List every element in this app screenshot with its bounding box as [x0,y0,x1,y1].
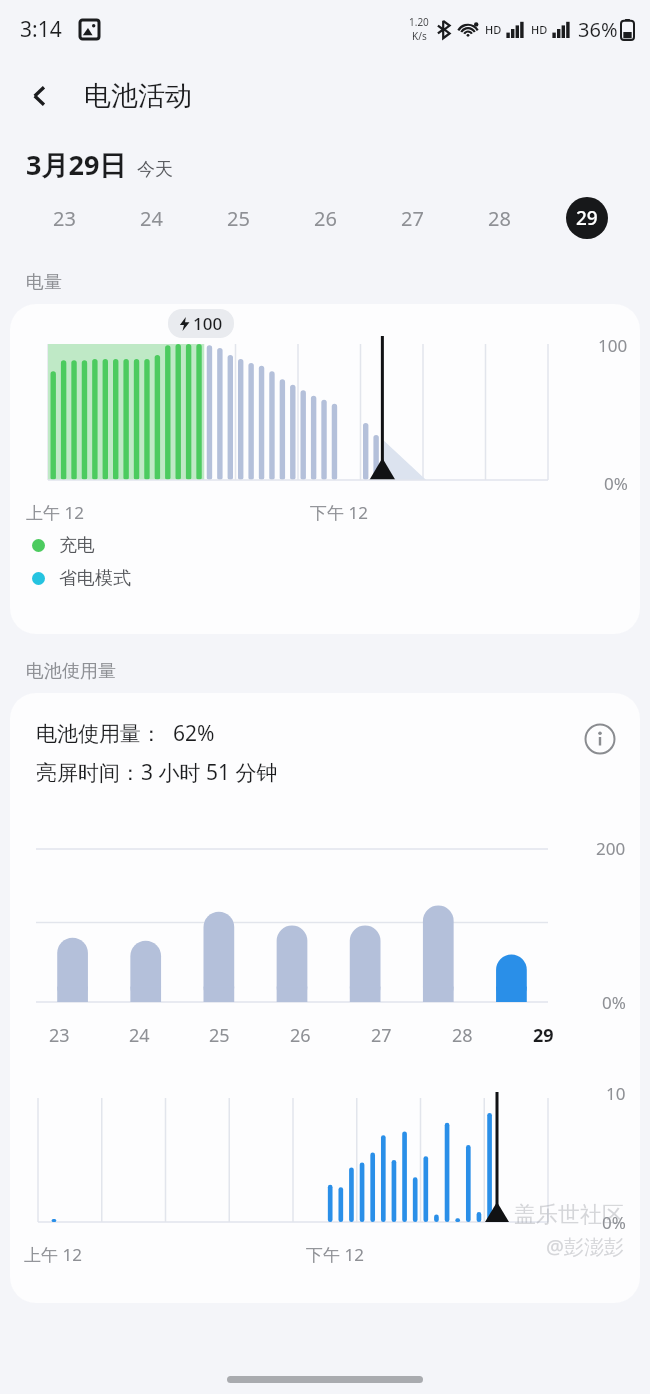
staticText: 23 [53,205,76,232]
staticText: 27 [371,1023,392,1048]
button[interactable]: Back [14,70,66,122]
staticText: 亮屏时间：3 小时 51 分钟 [36,758,278,787]
button[interactable]: 23 [20,183,108,253]
button[interactable]: 27 [369,183,456,253]
staticText: 28 [452,1023,473,1048]
staticText: 0% [604,472,628,495]
staticText: 0% [602,991,626,1014]
button[interactable]: 26 [282,183,369,253]
staticText: 10 [606,1082,626,1105]
staticText: 电量 [26,271,62,294]
staticText: 29 [576,205,598,231]
staticText: 26 [290,1023,311,1048]
staticText: 3月29日 [26,146,127,183]
staticText: 200 [596,837,626,860]
staticText: 下午 12 [310,501,368,524]
button[interactable]: 29 [543,183,630,253]
staticText: 今天 [137,158,173,181]
staticText: 下午 12 [306,1243,364,1266]
staticText: 上午 12 [26,501,84,524]
staticText: 1.20 [409,15,429,29]
staticText: 36% [578,16,618,43]
staticText: 省电模式 [59,567,131,590]
staticText: 电池使用量 [26,660,116,683]
button[interactable]: 电池使用量： 62% [10,693,640,1303]
staticText: 25 [209,1023,230,1048]
button[interactable]: 28 [456,183,543,253]
staticText: 3:14 [20,15,62,44]
button[interactable]: 100 [10,304,640,634]
staticText: 100 [598,334,628,357]
staticText: 0% [602,1211,626,1234]
staticText: 29 [533,1023,554,1048]
staticText: 24 [129,1023,150,1048]
staticText: 23 [49,1023,70,1048]
button[interactable]: 25 [195,183,282,253]
staticText: 27 [401,205,424,232]
staticText: 电池使用量： 62% [36,719,215,748]
staticText: 25 [227,205,250,232]
staticText: 100 [193,312,223,335]
staticText: 电池活动 [84,79,192,113]
staticText: 充电 [59,534,95,557]
button[interactable]: Info [580,719,620,759]
staticText: 盖乐世社区 [514,1201,624,1229]
button[interactable]: 24 [108,183,195,253]
staticText: HD [531,22,548,37]
staticText: 28 [488,205,511,232]
staticText: 上午 12 [24,1243,82,1266]
staticText: HD [485,22,502,37]
staticText: 26 [314,205,337,232]
staticText: @彭澎彭 [546,1233,624,1260]
staticText: K/s [412,29,427,43]
staticText: 24 [140,205,163,232]
